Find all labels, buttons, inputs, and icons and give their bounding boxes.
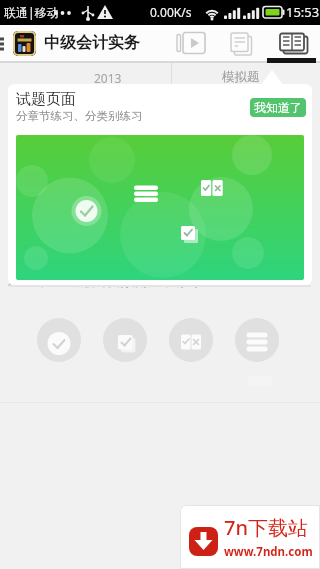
staticText: 我知道了 xyxy=(254,100,302,115)
staticText: 15:53 xyxy=(286,3,320,21)
staticText: 试题页面 xyxy=(16,90,76,109)
staticText: 分章节练习、分类别练习 xyxy=(16,109,143,123)
staticText: 7n下载站 xyxy=(224,514,308,541)
staticText: 模拟题 xyxy=(222,69,260,85)
staticText: 中级会计实务 xyxy=(44,33,140,53)
staticText: 2013年度中级会计实务模拟试题(二) xyxy=(8,273,199,289)
button[interactable]: 7n下载站 xyxy=(180,505,320,569)
staticText: 2013 xyxy=(94,70,122,86)
button[interactable] xyxy=(13,31,36,56)
button[interactable] xyxy=(276,30,312,57)
staticText: 联通|移动 xyxy=(4,4,59,20)
button[interactable] xyxy=(172,30,210,57)
button[interactable]: 我知道了 xyxy=(250,98,306,117)
staticText: www.7ndn.com xyxy=(224,544,313,560)
button[interactable] xyxy=(226,30,256,57)
staticText: 0.00K/s xyxy=(150,4,192,20)
